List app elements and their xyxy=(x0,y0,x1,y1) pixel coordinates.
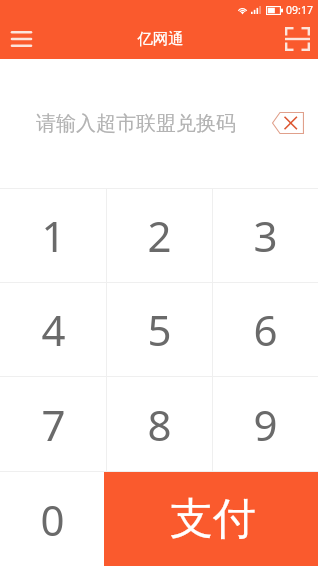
staticText: 2 xyxy=(147,207,172,264)
button[interactable]: 6 xyxy=(213,283,318,376)
staticText: 9 xyxy=(253,396,278,453)
button[interactable]: 请输入超市联盟兑换码 xyxy=(0,102,255,146)
staticText: 亿网通 xyxy=(137,29,184,49)
button[interactable]: Scan QR code xyxy=(279,21,315,57)
button[interactable]: Menu xyxy=(3,21,39,57)
staticText: 3 xyxy=(253,207,278,264)
button[interactable]: 9 xyxy=(213,377,318,471)
staticText: 7 xyxy=(41,396,66,453)
staticText: 4 xyxy=(41,301,66,358)
button[interactable]: 4 xyxy=(0,283,106,376)
staticText: 支付 xyxy=(170,492,256,546)
staticText: 09:17 xyxy=(286,3,313,17)
button[interactable]: 5 xyxy=(107,283,212,376)
staticText: 5 xyxy=(147,301,172,358)
button[interactable]: 支付 xyxy=(104,472,318,566)
staticText: 请输入超市联盟兑换码 xyxy=(36,111,236,136)
staticText: 6 xyxy=(253,301,278,358)
staticText: 1 xyxy=(41,207,66,264)
button[interactable]: 3 xyxy=(213,189,318,282)
button[interactable]: 1 xyxy=(0,189,106,282)
button[interactable]: Backspace xyxy=(268,108,308,138)
button[interactable]: 2 xyxy=(107,189,212,282)
staticText: 0 xyxy=(40,491,65,548)
staticText: 8 xyxy=(147,396,172,453)
button[interactable]: 7 xyxy=(0,377,106,471)
button[interactable]: 0 xyxy=(0,472,104,566)
button[interactable]: 8 xyxy=(107,377,212,471)
